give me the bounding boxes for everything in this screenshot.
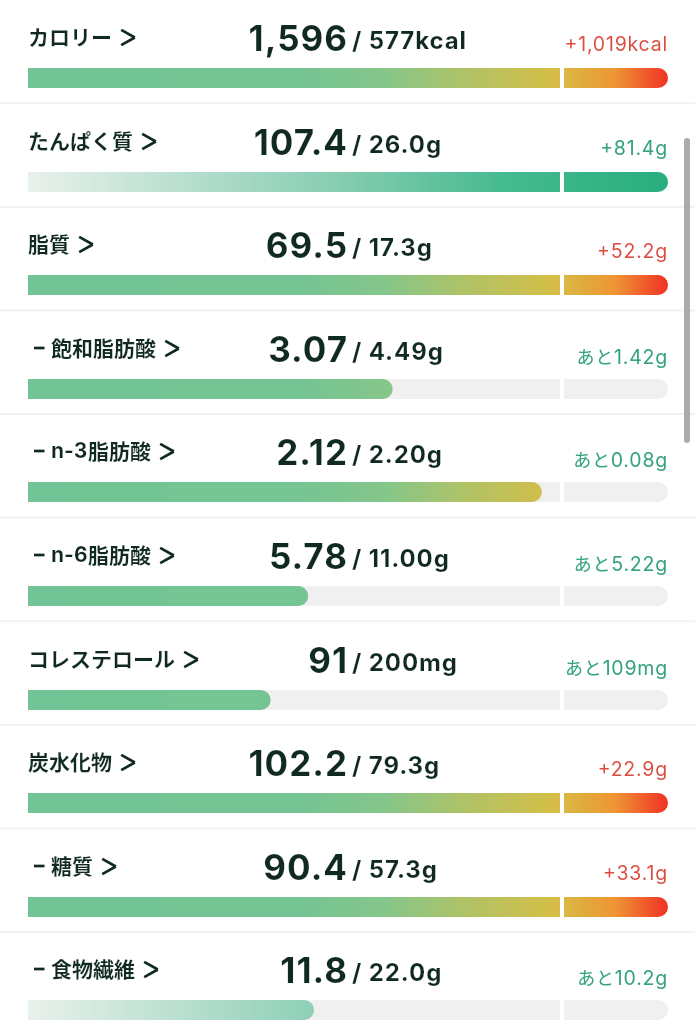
- button[interactable]: 炭水化物: [0, 725, 695, 826]
- button[interactable]: 脂質: [0, 207, 695, 308]
- staticText: 1,596: [0, 17, 348, 59]
- staticText: +52.2g: [0, 239, 668, 263]
- staticText: 91: [0, 639, 348, 681]
- staticText: 食物繊維: [51, 953, 135, 983]
- staticText: / 26.0g: [352, 130, 442, 159]
- staticText: 炭水化物: [28, 746, 112, 776]
- button[interactable]: 飽和脂肪酸: [0, 311, 695, 412]
- staticText: 脂肪酸: [88, 435, 151, 465]
- staticText: 90.4: [0, 846, 348, 888]
- staticText: / 17.3g: [352, 233, 433, 262]
- staticText: 脂肪酸: [88, 539, 151, 569]
- button[interactable]: コレステロール: [0, 622, 695, 723]
- staticText: コレステロール: [28, 643, 175, 673]
- staticText: 3.07: [0, 328, 348, 370]
- staticText: あと109mg: [0, 654, 668, 680]
- staticText: 糖質: [51, 850, 93, 880]
- staticText: / 11.00g: [352, 544, 450, 573]
- staticText: 107.4: [0, 121, 348, 163]
- button[interactable]: カロリー: [0, 0, 695, 101]
- staticText: 飽和脂肪酸: [51, 332, 156, 362]
- staticText: +22.9g: [0, 757, 668, 781]
- staticText: 102.2: [0, 742, 348, 784]
- staticText: カロリー: [28, 21, 112, 51]
- staticText: +33.1g: [0, 861, 668, 885]
- staticText: あと1.42g: [0, 343, 668, 369]
- staticText: / 577kcal: [352, 26, 467, 55]
- staticText: +1,019kcal: [0, 32, 668, 56]
- button[interactable]: たんぱく質: [0, 104, 695, 205]
- staticText: / 4.49g: [352, 337, 444, 366]
- staticText: あと5.22g: [0, 550, 668, 576]
- staticText: 2.12: [0, 431, 348, 473]
- staticText: / 57.3g: [352, 855, 438, 884]
- button[interactable]: n-3: [0, 414, 695, 515]
- staticText: 11.8: [0, 949, 348, 991]
- staticText: たんぱく質: [28, 125, 133, 155]
- staticText: +81.4g: [0, 136, 668, 160]
- button[interactable]: 食物繊維: [0, 932, 695, 1024]
- staticText: / 2.20g: [352, 440, 443, 469]
- staticText: n-6: [51, 542, 88, 567]
- button[interactable]: n-6: [0, 518, 695, 619]
- staticText: 69.5: [0, 224, 348, 266]
- staticText: n-3: [51, 438, 88, 463]
- staticText: 脂質: [28, 228, 70, 258]
- button[interactable]: 糖質: [0, 829, 695, 930]
- staticText: / 22.0g: [352, 958, 443, 987]
- staticText: 5.78: [0, 535, 348, 577]
- staticText: / 200mg: [352, 648, 458, 677]
- staticText: あと10.2g: [0, 964, 668, 990]
- staticText: / 79.3g: [352, 751, 441, 780]
- staticText: あと0.08g: [0, 446, 668, 472]
